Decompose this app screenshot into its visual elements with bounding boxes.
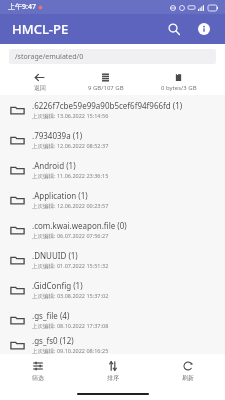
button[interactable]: /storage/emulated/0	[9, 49, 216, 64]
button[interactable]: Info	[191, 16, 217, 42]
staticText: .com.kwai.weapon.file (0)	[32, 220, 127, 231]
staticText: 上次编辑: 11.06.2022 23:36:15	[32, 172, 109, 180]
button[interactable]: 排序	[75, 354, 150, 388]
staticText: .DNUUID (1)	[32, 250, 78, 261]
button[interactable]: .7934039a (1)	[0, 125, 225, 155]
button[interactable]: 筛选	[0, 354, 75, 388]
button[interactable]: .6226f7cbe59e99a90b5cef6f94f966fd (1)	[0, 95, 225, 125]
staticText: 上午9:47	[8, 2, 36, 12]
staticText: 上次编辑: 09.10.2022 08:16:25	[32, 347, 109, 354]
button[interactable]: 9 GB/107 GB	[69, 71, 142, 93]
button[interactable]: 返回	[10, 71, 69, 93]
staticText: 上次编辑: 12.06.2022 00:23:57	[32, 202, 109, 210]
button[interactable]: .GidConfig (1)	[0, 275, 225, 305]
staticText: 上次编辑: 01.07.2022 15:51:32	[32, 262, 109, 270]
staticText: 返回	[34, 84, 46, 92]
staticText: 上次编辑: 08.10.2022 17:37:08	[32, 322, 109, 330]
button[interactable]: .DNUUID (1)	[0, 245, 225, 275]
button[interactable]: Search	[161, 16, 187, 42]
staticText: 9 GB/107 GB	[88, 84, 124, 92]
button[interactable]: .gs_file (4)	[0, 305, 225, 335]
button[interactable]: .com.kwai.weapon.file (0)	[0, 215, 225, 245]
button[interactable]: 0 bytes/3 GB	[142, 71, 215, 93]
button[interactable]: 刷新	[150, 354, 225, 388]
staticText: 0 bytes/3 GB	[161, 84, 197, 92]
staticText: 上次编辑: 03.08.2022 15:37:02	[32, 292, 109, 300]
staticText: .Android (1)	[32, 160, 76, 171]
staticText: .7934039a (1)	[32, 130, 83, 141]
staticText: 刷新	[182, 374, 194, 382]
staticText: .Application (1)	[32, 190, 88, 201]
staticText: 上次编辑: 06.07.2022 07:56:27	[32, 232, 109, 240]
staticText: HMCL-PE	[12, 20, 69, 38]
staticText: 上次编辑: 12.06.2022 08:52:37	[32, 142, 109, 150]
staticText: .GidConfig (1)	[32, 280, 83, 291]
staticText: 上次编辑: 13.06.2022 15:14:56	[32, 112, 109, 120]
staticText: .gs_file (4)	[32, 310, 70, 321]
staticText: 排序	[107, 374, 119, 382]
staticText: .gs_fs0 (12)	[32, 335, 74, 346]
staticText: .6226f7cbe59e99a90b5cef6f94f966fd (1)	[32, 100, 183, 111]
staticText: 筛选	[32, 374, 44, 382]
button[interactable]: .Application (1)	[0, 185, 225, 215]
button[interactable]: .Android (1)	[0, 155, 225, 185]
button[interactable]: .gs_fs0 (12)	[0, 335, 225, 354]
staticText: /storage/emulated/0	[15, 52, 84, 62]
